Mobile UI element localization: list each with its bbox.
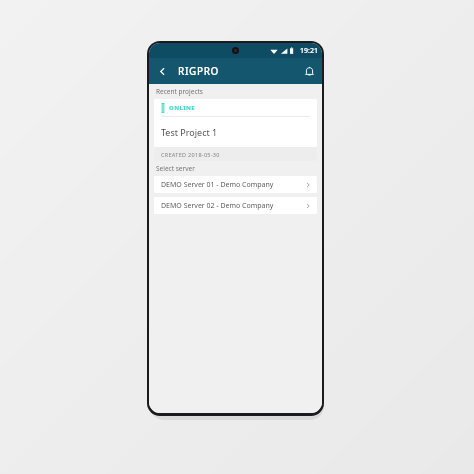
staticText: 19:21 [300, 46, 318, 56]
button[interactable]: DEMO Server 02 - Demo Company [154, 197, 317, 214]
staticText: Recent projects [156, 87, 203, 96]
staticText: Test Project 1 [161, 126, 218, 138]
staticText: Select server [156, 164, 195, 173]
button[interactable]: Notifications [296, 58, 322, 84]
staticText: ONLINE [169, 104, 195, 112]
staticText: RIGPRO [178, 64, 219, 78]
button[interactable]: DEMO Server 01 - Demo Company [154, 176, 317, 193]
button[interactable]: Back [149, 58, 175, 84]
button[interactable]: ONLINE [154, 99, 317, 161]
staticText: DEMO Server 02 - Demo Company [161, 201, 305, 211]
staticText: DEMO Server 01 - Demo Company [161, 180, 305, 190]
staticText: CREATED 2018-05-30 [161, 151, 220, 158]
